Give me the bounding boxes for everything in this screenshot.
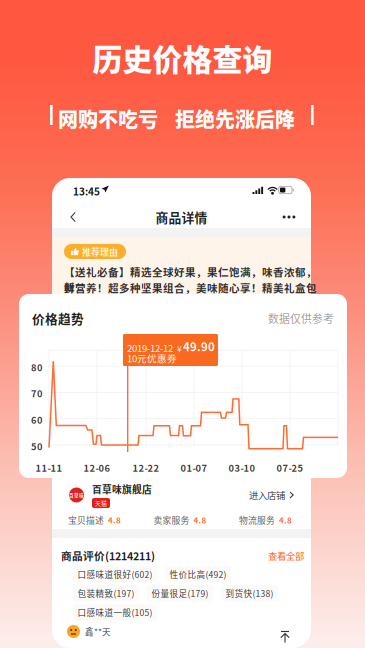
- button[interactable]: 口感味道一般(105): [73, 604, 157, 620]
- staticText: 13:45: [73, 184, 100, 198]
- staticText: 百草味: [69, 492, 84, 498]
- button[interactable]: 到货快(138): [221, 585, 278, 601]
- staticText: 4.8: [108, 514, 121, 526]
- staticText: 12-06: [83, 461, 110, 474]
- button[interactable]: 更多: [278, 206, 300, 228]
- button[interactable]: 包装精致(197): [73, 585, 139, 601]
- staticText: 鲜营养！超多种坚果组合，美味随心享！精美礼盒包: [64, 280, 317, 295]
- staticText: 4.8: [279, 514, 292, 526]
- button[interactable]: 口感味道很好(602): [73, 566, 157, 582]
- button[interactable]: 份量很足(179): [147, 585, 213, 601]
- staticText: 进入店铺: [249, 488, 285, 502]
- staticText: 推荐理由: [82, 245, 118, 258]
- staticText: 口感味道一般(105): [77, 606, 152, 618]
- staticText: 查看全部: [268, 549, 304, 562]
- button[interactable]: 性价比高(492): [165, 566, 231, 582]
- staticText: 07-25: [276, 461, 303, 474]
- staticText: 10元优惠券: [127, 351, 177, 365]
- staticText: ¥: [177, 342, 182, 355]
- staticText: 50: [31, 439, 43, 453]
- staticText: 鑫**天: [85, 625, 111, 638]
- staticText: 包装精致(197): [77, 587, 134, 599]
- staticText: 天猫: [95, 499, 107, 507]
- staticText: 商品详情: [155, 208, 207, 226]
- staticText: 60: [31, 413, 43, 426]
- staticText: 到货快(138): [225, 587, 273, 599]
- staticText: 2019-12-12: [127, 341, 173, 355]
- staticText: 历史价格查询: [92, 36, 272, 79]
- button[interactable]: 回到顶部: [272, 624, 298, 648]
- staticText: 70: [31, 386, 43, 400]
- button[interactable]: 进入店铺: [249, 488, 294, 502]
- staticText: 01-07: [180, 461, 207, 474]
- button[interactable]: 查看全部: [268, 549, 304, 562]
- staticText: 宝贝描述: [68, 514, 104, 526]
- staticText: 12-22: [132, 461, 159, 474]
- staticText: 物流服务: [239, 514, 275, 526]
- staticText: 百草味旗舰店: [92, 482, 152, 496]
- staticText: 49.90: [183, 338, 215, 355]
- staticText: 性价比高(492): [169, 568, 226, 580]
- staticText: 4.8: [193, 514, 206, 526]
- staticText: 数据仅供参考: [268, 310, 334, 326]
- staticText: 03-10: [228, 461, 255, 474]
- staticText: 拒绝先涨后降: [175, 104, 295, 133]
- staticText: 口感味道很好(602): [77, 568, 152, 580]
- staticText: 【送礼必备】精选全球好果，果仁饱满，味香浓郁，新: [64, 264, 317, 294]
- staticText: 商品评价(1214211): [61, 548, 155, 563]
- button[interactable]: 返回: [62, 206, 84, 228]
- staticText: 卖家服务: [153, 514, 189, 526]
- staticText: 份量很足(179): [151, 587, 208, 599]
- staticText: 网购不吃亏: [58, 104, 158, 133]
- staticText: 11-11: [35, 461, 62, 474]
- staticText: 80: [31, 360, 43, 374]
- staticText: 价格趋势: [32, 309, 84, 327]
